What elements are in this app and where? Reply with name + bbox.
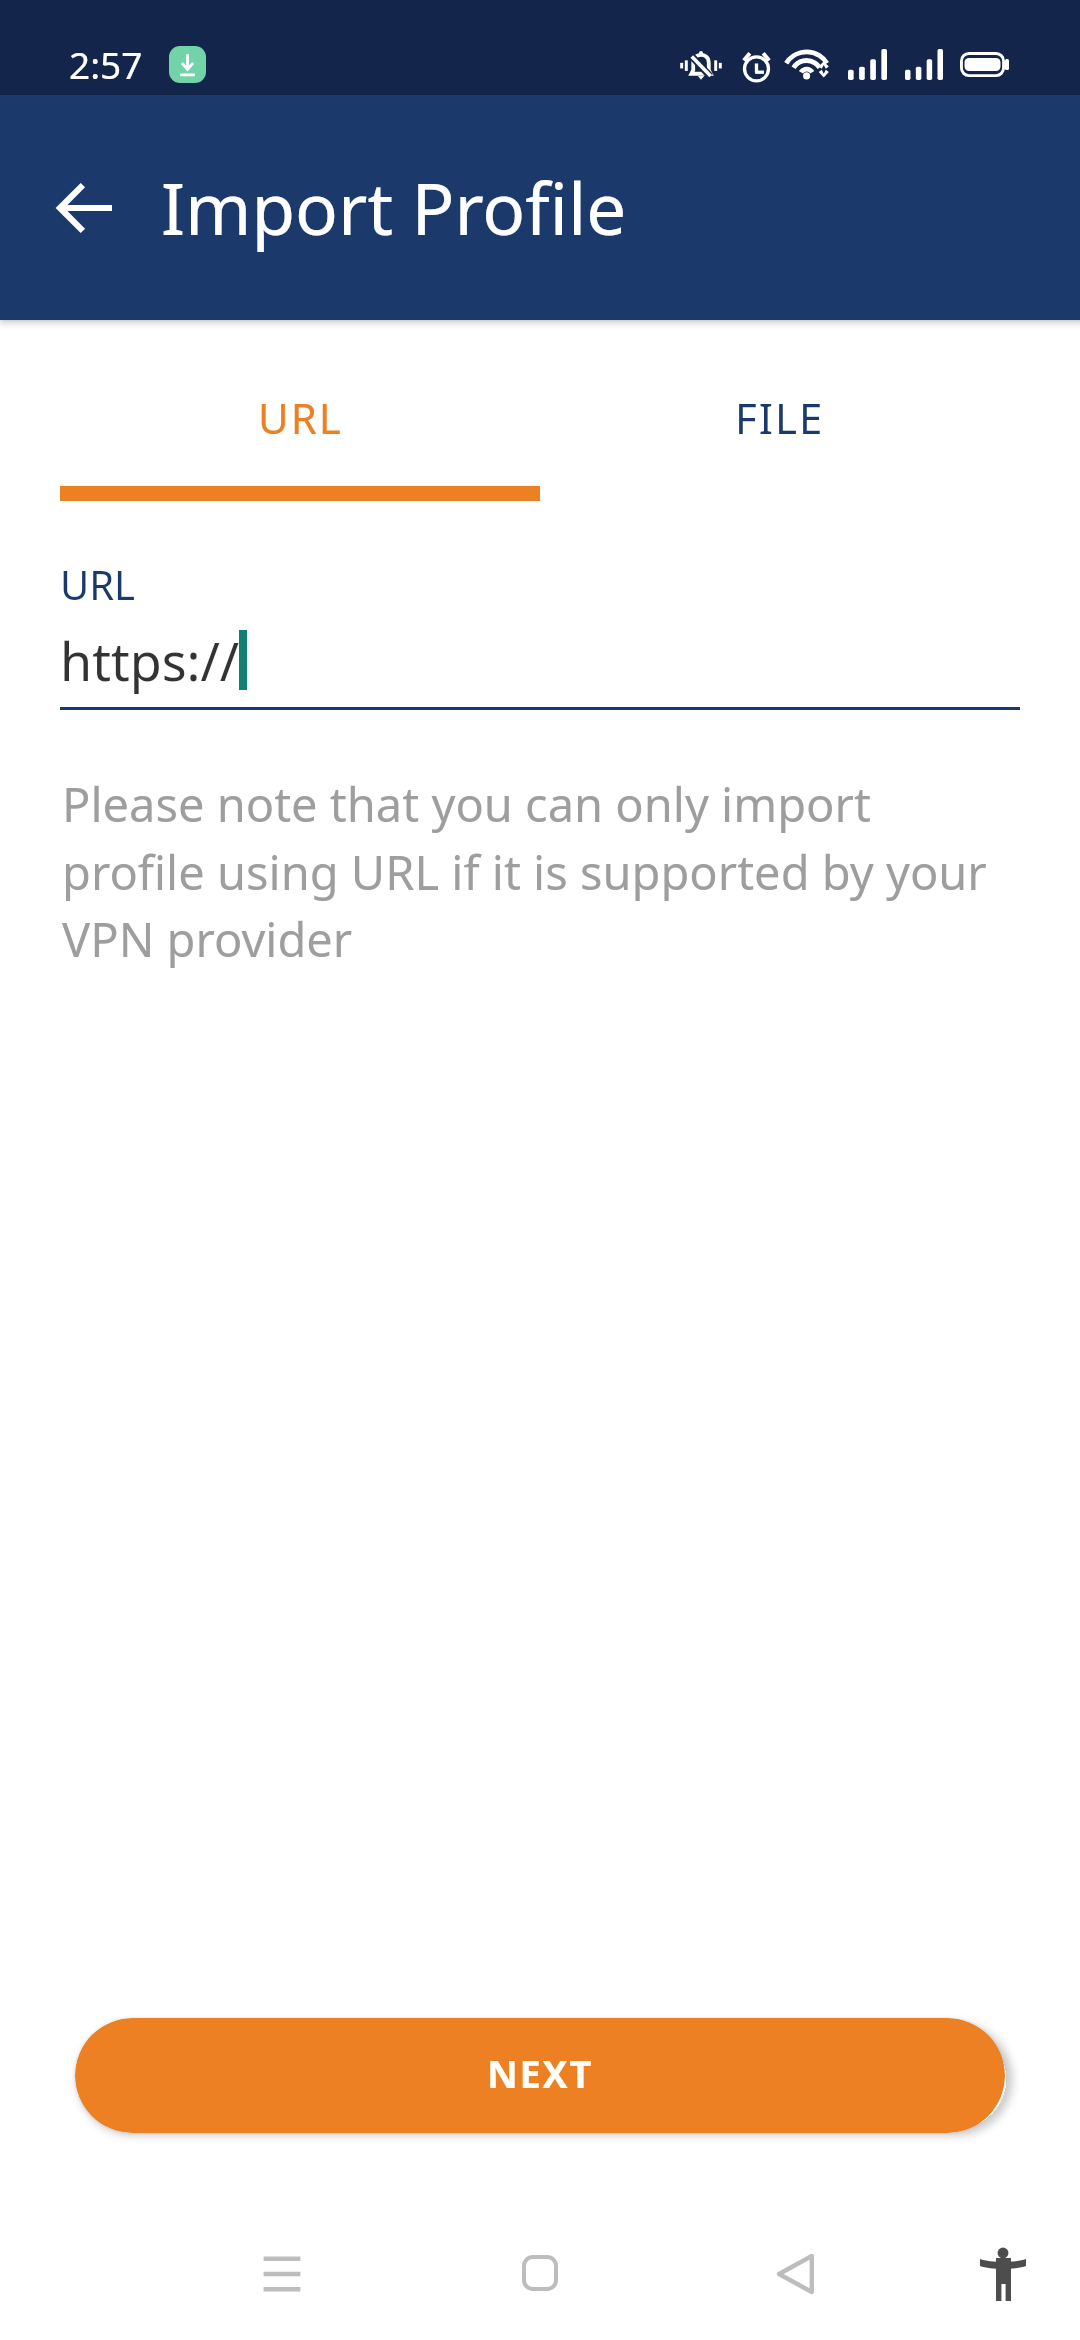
staticText: https:// [60, 625, 240, 696]
button[interactable]: Back [46, 168, 126, 248]
button[interactable]: Recent apps [242, 2234, 322, 2314]
staticText: Please note that you can only import pro… [62, 772, 1018, 970]
button[interactable]: Accessibility [963, 2234, 1043, 2314]
staticText: Import Profile [161, 159, 627, 256]
staticText: NEXT [487, 2047, 593, 2099]
staticText: FILE [735, 389, 825, 443]
button[interactable]: FILE [540, 389, 1020, 443]
staticText: URL [60, 557, 136, 611]
button[interactable]: URL [60, 389, 540, 443]
button[interactable]: Home [500, 2234, 580, 2314]
staticText: 2:57 [69, 39, 143, 89]
button[interactable]: NEXT [75, 2018, 1005, 2133]
button[interactable]: Back [757, 2234, 837, 2314]
staticText: URL [258, 389, 343, 443]
